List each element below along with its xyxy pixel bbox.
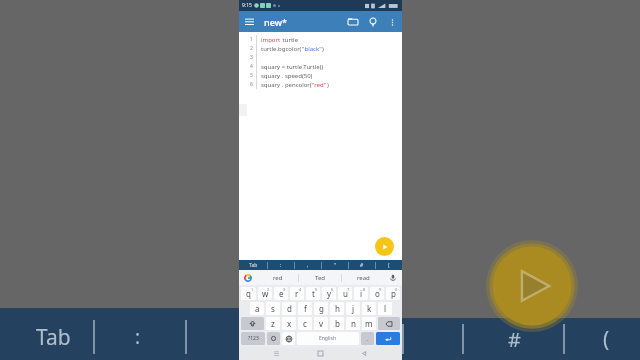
button[interactable]: Voice input xyxy=(384,270,402,285)
button[interactable]: Ted xyxy=(299,270,341,285)
button[interactable]: : xyxy=(268,260,294,270)
staticText: i xyxy=(360,288,363,299)
button[interactable]: red xyxy=(257,270,298,285)
button[interactable]: ( xyxy=(376,260,402,270)
button[interactable]: . xyxy=(361,332,374,345)
staticText: n xyxy=(351,318,356,329)
button[interactable]: q xyxy=(241,287,256,300)
button[interactable]: Tab xyxy=(239,260,267,270)
staticText: 4 xyxy=(299,287,302,292)
staticText: import xyxy=(261,36,281,44)
staticText: g xyxy=(319,303,324,314)
button[interactable]: read xyxy=(342,270,384,285)
staticText: 5 xyxy=(315,287,318,292)
staticText: p xyxy=(391,288,396,299)
staticText: Tab xyxy=(249,262,258,269)
button[interactable]: " xyxy=(322,260,348,270)
staticText: k xyxy=(367,303,372,314)
staticText: 4 xyxy=(250,63,253,70)
staticText: 3 xyxy=(283,287,286,292)
staticText: . xyxy=(367,335,369,343)
staticText: x xyxy=(287,318,292,329)
button[interactable]: i xyxy=(354,287,368,300)
staticText: 2 xyxy=(267,287,270,292)
button[interactable]: j xyxy=(346,302,360,315)
staticText: h xyxy=(335,303,340,314)
button[interactable]: a xyxy=(250,302,264,315)
staticText: Tab xyxy=(36,323,71,352)
button[interactable]: Back xyxy=(358,347,371,360)
staticText: 6 xyxy=(250,81,253,88)
staticText: q xyxy=(246,288,251,299)
button[interactable]: Shift xyxy=(241,317,264,330)
staticText: # xyxy=(508,326,521,353)
staticText: Ted xyxy=(315,274,325,282)
button[interactable]: Change language xyxy=(282,332,295,345)
staticText: squary . pencolor( xyxy=(261,81,312,89)
staticText: # xyxy=(360,262,364,269)
button[interactable]: English xyxy=(297,332,359,345)
staticText: t xyxy=(312,288,315,299)
button[interactable]: u xyxy=(338,287,352,300)
button[interactable]: r xyxy=(290,287,304,300)
button[interactable]: Emoji xyxy=(267,332,280,345)
button[interactable]: Google xyxy=(239,270,257,285)
staticText: r xyxy=(295,288,299,299)
staticText: : xyxy=(280,262,282,269)
button[interactable]: Menu xyxy=(239,11,260,32)
staticText: b xyxy=(335,318,340,329)
staticText: ( xyxy=(388,262,390,269)
button[interactable]: x xyxy=(282,317,296,330)
button[interactable]: m xyxy=(362,317,376,330)
staticText: u xyxy=(343,288,348,299)
staticText: " xyxy=(334,262,337,269)
staticText: squary . speed(50) xyxy=(261,72,313,80)
button[interactable]: y xyxy=(322,287,336,300)
staticText: 8 xyxy=(363,287,366,292)
button[interactable]: Recents xyxy=(270,347,283,360)
button[interactable]: Enter xyxy=(376,332,400,345)
button[interactable]: h xyxy=(330,302,344,315)
button[interactable]: ?123 xyxy=(241,332,265,345)
staticText: l xyxy=(384,303,387,314)
button[interactable]: p xyxy=(386,287,400,300)
button[interactable]: f xyxy=(298,302,312,315)
staticText: turtle xyxy=(281,36,299,44)
staticText: red xyxy=(273,274,283,282)
button[interactable]: Backspace xyxy=(378,317,400,330)
staticText: 6 xyxy=(331,287,334,292)
button[interactable]: g xyxy=(314,302,328,315)
staticText: a xyxy=(255,303,260,314)
button[interactable]: n xyxy=(346,317,360,330)
staticText: m xyxy=(365,318,373,329)
staticText: 1 xyxy=(250,36,253,43)
button[interactable]: More options xyxy=(383,13,401,31)
button[interactable]: Hint xyxy=(363,12,383,32)
button[interactable]: new* xyxy=(264,16,287,28)
button[interactable]: l xyxy=(378,302,392,315)
button[interactable]: d xyxy=(282,302,296,315)
staticText: read xyxy=(357,274,370,282)
staticText: y xyxy=(327,288,332,299)
button[interactable]: Run xyxy=(375,237,394,256)
button[interactable]: c xyxy=(298,317,312,330)
button[interactable]: k xyxy=(362,302,376,315)
staticText: 5 xyxy=(250,72,253,79)
button[interactable]: z xyxy=(266,317,280,330)
staticText: squary = turtle.Turtle() xyxy=(261,63,324,71)
staticText: 9 xyxy=(379,287,382,292)
button[interactable]: v xyxy=(314,317,328,330)
button[interactable]: s xyxy=(266,302,280,315)
button[interactable]: w xyxy=(258,287,272,300)
button[interactable]: Open file xyxy=(343,12,363,32)
staticText: d xyxy=(287,303,292,314)
staticText: 7 xyxy=(347,287,350,292)
button[interactable]: o xyxy=(370,287,384,300)
button[interactable]: t xyxy=(306,287,320,300)
button[interactable]: # xyxy=(349,260,375,270)
button[interactable]: , xyxy=(295,260,321,270)
button[interactable]: Home xyxy=(314,347,327,360)
button[interactable]: b xyxy=(330,317,344,330)
staticText: f xyxy=(304,303,307,314)
button[interactable]: e xyxy=(274,287,288,300)
